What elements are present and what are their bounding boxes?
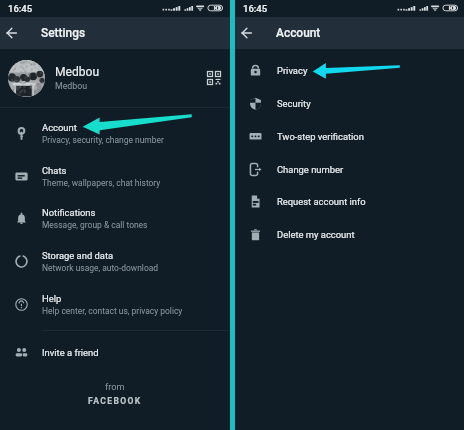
staticText: Privacy, security, change number — [42, 135, 164, 145]
staticText: Chats — [42, 165, 67, 176]
staticText: Account — [42, 122, 77, 133]
button[interactable]: Request account info — [235, 188, 464, 214]
button[interactable]: Help — [0, 283, 230, 325]
staticText: Account — [276, 26, 321, 40]
button[interactable]: Chats — [0, 155, 230, 197]
staticText: Medbou — [55, 81, 88, 91]
button[interactable]: Back — [241, 22, 263, 44]
button[interactable]: Account — [0, 112, 230, 154]
staticText: Notifications — [42, 207, 96, 218]
staticText: Change number — [277, 164, 344, 175]
staticText: Theme, wallpapers, chat history — [42, 178, 161, 188]
button[interactable]: Two-step verification — [235, 123, 464, 149]
staticText: Help center, contact us, privacy policy — [42, 306, 183, 316]
staticText: Medbou — [55, 65, 100, 79]
staticText: Privacy — [277, 65, 308, 76]
button[interactable]: Delete my account — [235, 221, 464, 247]
button[interactable]: Change number — [235, 156, 464, 182]
staticText: from — [105, 381, 125, 392]
staticText: Two-step verification — [277, 131, 364, 142]
button[interactable]: Medbou — [0, 49, 230, 107]
button[interactable]: Security — [235, 90, 464, 116]
staticText: Settings — [41, 26, 86, 40]
staticText: Message, group & call tones — [42, 220, 148, 230]
button[interactable]: Storage and data — [0, 240, 230, 282]
staticText: FACEBOOK — [88, 396, 142, 406]
button[interactable]: Notifications — [0, 197, 230, 239]
staticText: Security — [277, 98, 311, 109]
button[interactable]: Invite a friend — [0, 337, 230, 367]
staticText: Network usage, auto-download — [42, 263, 159, 273]
staticText: 16:45 — [243, 3, 268, 14]
staticText: 16:45 — [8, 3, 33, 14]
button[interactable]: QR code — [202, 66, 226, 90]
staticText: Delete my account — [277, 229, 355, 240]
button[interactable]: Back — [6, 22, 28, 44]
staticText: Invite a friend — [42, 347, 99, 358]
staticText: Request account info — [277, 196, 366, 207]
button[interactable]: Privacy — [235, 57, 464, 83]
staticText: Help — [42, 293, 62, 304]
staticText: Storage and data — [42, 250, 114, 261]
